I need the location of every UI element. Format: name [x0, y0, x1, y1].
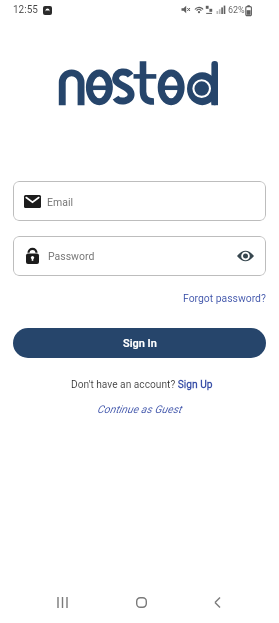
button[interactable]: [136, 597, 147, 608]
button[interactable]: Email: [13, 181, 266, 221]
staticText: 62%: [228, 5, 245, 16]
button[interactable]: Password: [13, 236, 266, 276]
button[interactable]: [214, 597, 221, 608]
staticText: 12:55: [13, 4, 38, 16]
button[interactable]: Don't have an account? Sign Up: [71, 379, 213, 391]
button[interactable]: [57, 597, 69, 608]
button[interactable]: Continue as Guest: [97, 403, 182, 416]
button[interactable]: Sign In: [13, 328, 266, 358]
staticText: Sign In: [123, 337, 157, 350]
button[interactable]: Forgot password?: [183, 292, 266, 304]
button[interactable]: [233, 244, 257, 268]
staticText: Email: [47, 196, 73, 208]
staticText: Password: [48, 250, 95, 262]
